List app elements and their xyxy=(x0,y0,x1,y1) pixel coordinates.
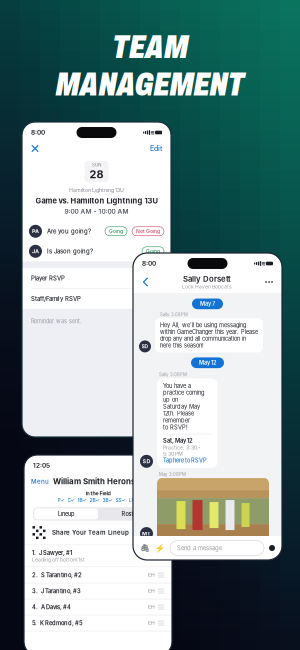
staticText: SD xyxy=(141,343,148,349)
staticText: ≋ xyxy=(261,260,266,267)
staticText: Tap here to RSVP xyxy=(163,457,207,464)
staticText: Hey All, we'll be using messaging xyxy=(160,322,246,328)
staticText: Sally 3:08PM xyxy=(159,372,187,377)
button[interactable]: Going xyxy=(105,227,127,236)
button[interactable]: 3. xyxy=(24,583,172,599)
staticText: Reminder was sent. xyxy=(31,318,82,324)
button[interactable]: 2. xyxy=(24,567,172,583)
staticText: SS✓ xyxy=(115,497,125,503)
staticText: 8:00 xyxy=(31,129,45,136)
staticText: 🖇 xyxy=(140,543,150,553)
staticText: Hamilton Lightning 13U xyxy=(69,187,124,193)
button[interactable]: Close xyxy=(31,144,39,152)
staticText: JA xyxy=(32,248,39,254)
button[interactable]: Tap here to RSVP xyxy=(163,457,207,464)
staticText: EH xyxy=(148,620,155,626)
staticText: to go team! xyxy=(170,556,201,563)
staticText: Going xyxy=(109,228,123,234)
staticText: drop any and all communication in xyxy=(160,335,246,342)
staticText: 5. xyxy=(32,620,37,626)
staticText: C✓ xyxy=(67,497,74,503)
staticText: P✓ xyxy=(57,497,64,503)
staticText: EH xyxy=(148,588,155,594)
staticText: Is Jason going? xyxy=(47,248,93,255)
staticText: within GameChanger this year. Please xyxy=(160,328,258,335)
staticText: to RSVP! xyxy=(163,424,188,431)
staticText: EH xyxy=(148,604,155,610)
staticText: 1. xyxy=(32,549,36,556)
staticText: You have a practice coming up on xyxy=(163,382,205,403)
staticText: May 12 xyxy=(199,359,216,366)
staticText: EH xyxy=(148,572,155,578)
button[interactable]: Going xyxy=(142,247,164,256)
button[interactable]: Edit xyxy=(150,144,162,153)
staticText: Sally Dorsett xyxy=(183,274,231,283)
staticText: MT xyxy=(142,530,151,537)
staticText: K Redmond, #5 xyxy=(40,620,83,626)
staticText: 1B✓ xyxy=(77,497,86,503)
staticText: 28 xyxy=(89,168,103,181)
staticText: S Tarantino, #2 xyxy=(41,572,82,578)
button[interactable]: Menu xyxy=(31,478,49,485)
button[interactable]: 1. xyxy=(24,545,172,567)
staticText: PA xyxy=(32,228,39,234)
staticText: SD xyxy=(142,458,150,465)
staticText: ≋ xyxy=(150,129,155,136)
staticText: Player RSVP xyxy=(31,275,65,282)
button[interactable]: More options xyxy=(264,277,274,287)
staticText: EH xyxy=(148,550,155,556)
staticText: 2B✓ xyxy=(89,497,99,503)
staticText: Leading off bottom 1st xyxy=(32,556,85,563)
staticText: Lock Haven Bobcats xyxy=(182,284,232,290)
staticText: 3B✓ xyxy=(102,497,112,503)
staticText: TEAM xyxy=(112,29,188,65)
staticText: 8:00 xyxy=(142,260,156,267)
button[interactable]: Back xyxy=(141,276,150,287)
staticText: 2. xyxy=(32,572,38,578)
button[interactable]: Staff/Family RSVP xyxy=(22,289,171,309)
staticText: Sat, May 12 xyxy=(163,437,193,444)
staticText: LF✓ xyxy=(128,497,138,503)
staticText: Sally 3:08PM xyxy=(160,312,188,317)
staticText: here this season! xyxy=(160,342,204,349)
staticText: Game vs. Hamilton Lightning 13U xyxy=(35,196,157,205)
staticText: Lineup xyxy=(58,510,74,517)
staticText: Staff/Family RSVP xyxy=(31,295,81,302)
staticText: MANAGEMENT xyxy=(55,66,244,103)
staticText: Roster xyxy=(121,510,138,517)
staticText: J Sawyer, #1 xyxy=(39,549,72,556)
staticText: In the Field xyxy=(85,490,110,496)
staticText: J Tarantino, #3 xyxy=(41,588,81,594)
staticText: Saturday May 12th. Please remember xyxy=(163,403,200,424)
staticText: William Smith Herons xyxy=(53,477,135,486)
staticText: A Davis, #4 xyxy=(41,604,71,610)
button[interactable]: 4. xyxy=(24,599,172,615)
staticText: Menu xyxy=(31,478,49,485)
staticText: Send a message xyxy=(177,544,222,552)
staticText: Not Going xyxy=(136,228,160,234)
staticText: ≋ xyxy=(151,462,156,469)
button[interactable]: Player RSVP xyxy=(22,268,171,288)
staticText: Edit xyxy=(150,144,162,153)
staticText: Going xyxy=(146,248,160,254)
staticText: Everyone is really hustling today, way xyxy=(170,549,268,556)
staticText: 3. xyxy=(32,588,38,594)
staticText: May 7 xyxy=(200,300,215,307)
button[interactable]: Not Going xyxy=(132,227,164,236)
staticText: 9:00 AM - 10:00 AM xyxy=(64,207,128,215)
staticText: May 3:08PM xyxy=(159,472,186,477)
staticText: Are you going? xyxy=(47,228,91,235)
staticText: ⚡ xyxy=(155,543,165,553)
staticText: 12:05 xyxy=(33,462,50,469)
staticText: Share Your Team Lineup xyxy=(52,529,129,536)
staticText: SUN xyxy=(92,162,101,168)
button[interactable]: 5. xyxy=(24,615,172,631)
staticText: 4. xyxy=(32,604,38,610)
staticText: Practice, 3:30 - 5:30 PM xyxy=(163,444,200,457)
